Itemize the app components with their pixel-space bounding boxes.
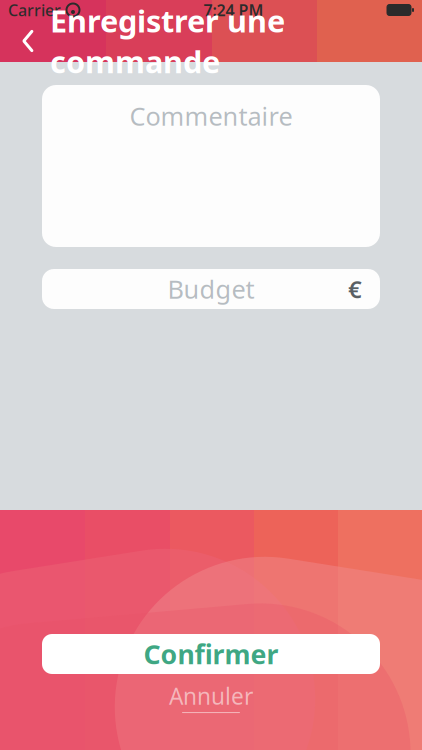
button[interactable]: Back — [6, 20, 50, 62]
staticText: Enregistrer une commande — [50, 0, 285, 82]
staticText: Budget — [167, 272, 254, 306]
staticText: Commentaire — [129, 99, 292, 133]
staticText: Confirmer — [143, 636, 278, 672]
button[interactable]: Budget — [42, 269, 380, 309]
button[interactable]: Confirmer — [42, 634, 380, 674]
staticText: € — [348, 273, 362, 305]
button[interactable]: Commentaire — [42, 85, 380, 247]
staticText: Annuler — [169, 681, 253, 711]
staticText: Carrier — [8, 0, 61, 21]
button[interactable]: Annuler — [42, 674, 380, 708]
staticText: 7:24 PM — [203, 0, 263, 21]
